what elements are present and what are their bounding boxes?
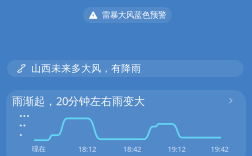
staticText: 18:42 <box>123 144 141 154</box>
button[interactable]: 山西未来多大风，有降雨 <box>7 60 243 77</box>
button[interactable]: 雷暴大风蓝色预警 <box>83 7 172 23</box>
staticText: 18:12 <box>78 144 96 154</box>
staticText: 19:12 <box>167 144 185 154</box>
staticText: 19:42 <box>210 144 228 154</box>
staticText: 雨渐起，20分钟左右雨变大 <box>12 93 145 108</box>
staticText: 山西未来多大风，有降雨 <box>31 62 141 75</box>
staticText: 现在 <box>31 144 45 154</box>
button[interactable]: 雨渐起，20分钟左右雨变大 <box>0 0 252 156</box>
staticText: 雷暴大风蓝色预警 <box>102 10 166 20</box>
